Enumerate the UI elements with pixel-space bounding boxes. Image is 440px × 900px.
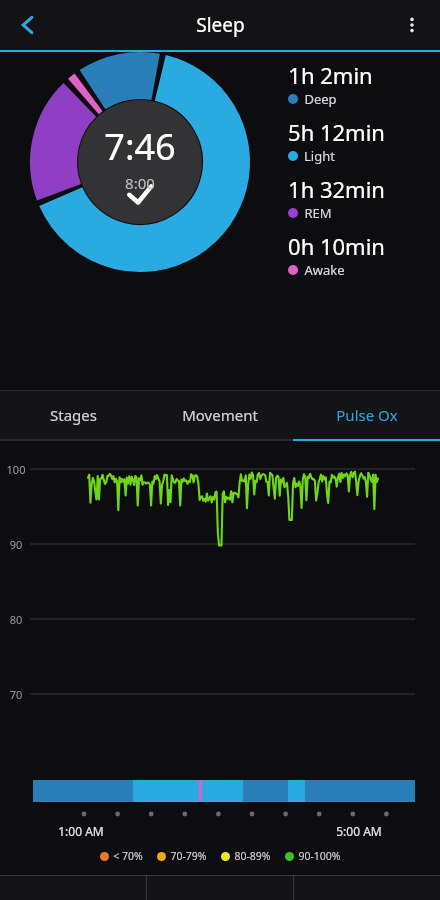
button[interactable]: Pulse Ox [293,391,440,439]
staticText: Light [304,147,335,165]
staticText: Deep [304,90,337,108]
staticText: Movement [182,405,258,425]
button[interactable]: Stages [0,391,146,439]
staticText: 7:46 [104,122,176,171]
staticText: 100 [4,462,28,477]
staticText: 5h 12min [288,117,385,147]
staticText: 1:00 AM [58,823,104,839]
button[interactable]: Back [6,3,50,47]
staticText: 80-89% [234,849,271,863]
staticText: 8:00 [125,173,155,193]
staticText: 1h 32min [288,174,385,204]
staticText: 1h 2min [288,60,373,90]
staticText: Sleep [196,12,245,38]
staticText: REM [304,204,332,222]
staticText: 5:00 AM [336,823,382,839]
staticText: Stages [50,405,97,425]
staticText: Pulse Ox [336,405,398,425]
button[interactable]: Movement [146,391,293,439]
staticText: 80 [4,612,28,627]
staticText: 70 [4,687,28,702]
staticText: Awake [304,261,345,279]
button[interactable]: More options [390,3,434,47]
staticText: < 70% [113,849,143,863]
staticText: 90-100% [298,849,341,863]
staticText: 90 [4,537,28,552]
staticText: 70-79% [170,849,207,863]
staticText: 0h 10min [288,231,385,261]
